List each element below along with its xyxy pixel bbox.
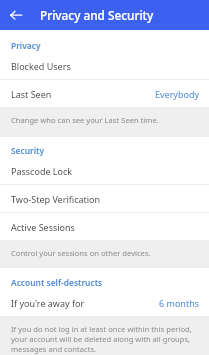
staticText: Active Sessions [11,221,75,233]
staticText: 6 months [159,297,200,309]
staticText: Privacy and Security [40,7,154,23]
staticText: Change who can see your Last Seen time. [11,115,159,125]
staticText: Everybody [155,88,200,100]
staticText: If you do not log in at least once withi… [11,324,197,354]
button[interactable]: Blocked Users [0,52,209,79]
staticText: Control your sessions on other devices. [11,248,151,258]
staticText: Blocked Users [11,60,71,72]
button[interactable]: Two-Step Verification [0,185,209,212]
staticText: Passcode Lock [11,165,73,177]
staticText: If you're away for [11,297,85,309]
button[interactable]: Passcode Lock [0,157,209,184]
button[interactable]: Back [1,1,30,30]
staticText: Privacy [11,40,41,51]
button[interactable]: Last Seen [0,80,209,107]
staticText: Security [11,145,45,156]
staticText: Two-Step Verification [11,193,101,205]
button[interactable]: If you're away for [0,289,209,316]
button[interactable]: Active Sessions [0,213,209,240]
staticText: Account self-destructs [11,277,103,288]
staticText: Last Seen [11,88,52,100]
